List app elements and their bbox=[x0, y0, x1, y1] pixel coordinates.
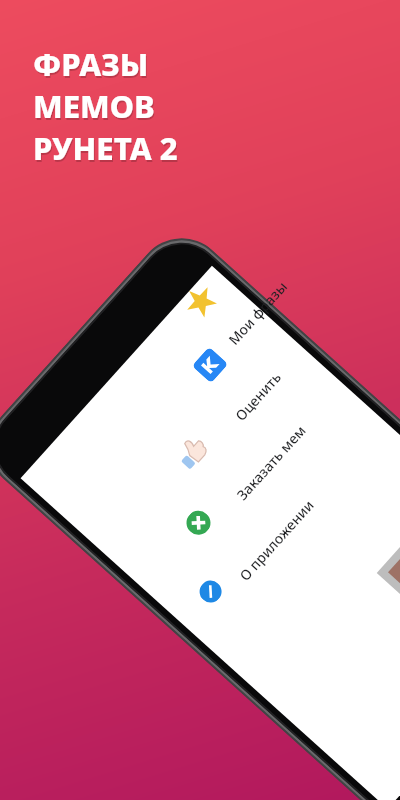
staticText: Заказать мем bbox=[232, 421, 310, 504]
staticText: МЕМОВ bbox=[33, 85, 155, 127]
button[interactable]: Close bbox=[181, 506, 215, 540]
button[interactable]: Оценить bbox=[228, 365, 288, 428]
staticText: ФРАЗЫ bbox=[34, 45, 150, 87]
button[interactable]: Мои фразы bbox=[221, 274, 295, 351]
staticText: Оценить bbox=[231, 367, 285, 425]
staticText: ФРАЗЫ bbox=[33, 43, 149, 85]
staticText: РУНЕТА 2 bbox=[34, 129, 179, 171]
button[interactable]: Edit bbox=[195, 576, 226, 607]
button[interactable]: Заказать мем bbox=[229, 418, 313, 507]
button[interactable]: VK bbox=[192, 347, 228, 383]
staticText: О приложении bbox=[235, 495, 318, 585]
staticText: РУНЕТА 2 bbox=[33, 127, 178, 169]
button[interactable] bbox=[388, 465, 400, 682]
button[interactable]: Rate bbox=[178, 279, 224, 324]
staticText: МЕМОВ bbox=[34, 87, 156, 129]
button[interactable]: Like bbox=[172, 433, 212, 472]
button[interactable]: О приложении bbox=[232, 492, 321, 587]
staticText: Мои фразы bbox=[224, 276, 292, 349]
